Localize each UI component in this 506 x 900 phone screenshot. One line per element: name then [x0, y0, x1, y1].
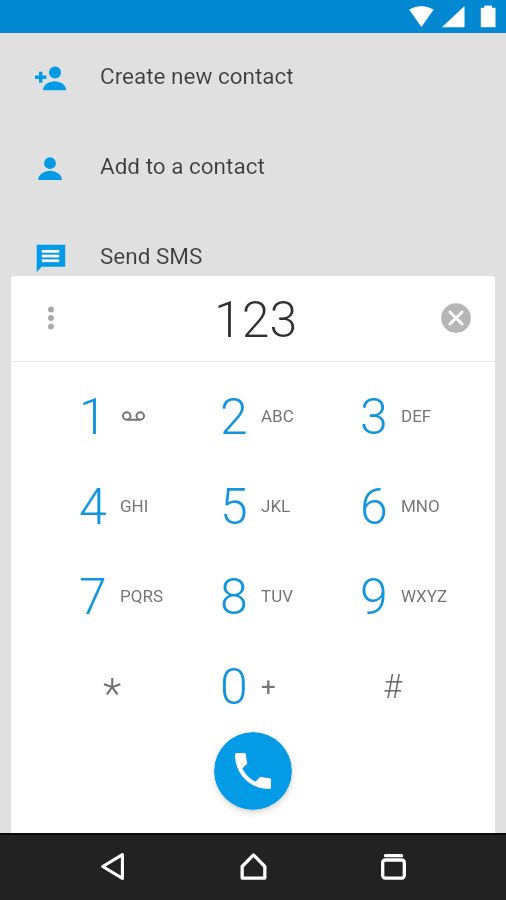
staticText: WXYZ — [401, 586, 448, 606]
staticText: JKL — [261, 496, 291, 516]
staticText: TUV — [261, 586, 293, 606]
staticText: Create new contact — [100, 63, 294, 89]
staticText: DEF — [401, 406, 432, 426]
staticText: + — [261, 672, 276, 702]
staticText: MNO — [401, 496, 440, 516]
staticText: Add to a contact — [100, 153, 265, 179]
staticText: # — [383, 667, 403, 706]
staticText: 6 — [360, 478, 388, 537]
staticText: GHI — [120, 496, 149, 516]
button[interactable]: 5 — [183, 461, 323, 551]
button[interactable]: Clear — [432, 297, 476, 341]
button[interactable]: 4 — [42, 461, 183, 551]
staticText: 123 — [214, 291, 298, 350]
staticText: 7 — [79, 568, 107, 627]
button[interactable]: Create new contact — [0, 33, 506, 123]
button[interactable]: Add to a contact — [0, 123, 506, 213]
button[interactable]: 1 — [42, 371, 183, 461]
staticText: ABC — [261, 406, 294, 426]
staticText: * — [103, 668, 122, 718]
button[interactable]: 0 — [183, 641, 323, 731]
button[interactable]: Back — [43, 833, 183, 900]
button[interactable]: Recents — [323, 833, 463, 900]
button[interactable]: 6 — [323, 461, 463, 551]
button[interactable]: # — [323, 641, 463, 731]
button[interactable]: Call — [214, 732, 292, 810]
staticText: 2 — [220, 388, 248, 447]
staticText: Send SMS — [100, 243, 203, 269]
button[interactable]: 8 — [183, 551, 323, 641]
button[interactable]: 3 — [323, 371, 463, 461]
button[interactable]: 7 — [42, 551, 183, 641]
staticText: 1 — [79, 388, 107, 447]
button[interactable]: Send SMS — [0, 213, 506, 303]
button[interactable]: * — [42, 641, 183, 731]
staticText: 5 — [220, 478, 248, 537]
button[interactable]: Home — [183, 833, 323, 900]
button[interactable]: More options — [27, 295, 75, 343]
staticText: 8 — [220, 568, 248, 627]
staticText: 9 — [360, 568, 388, 627]
staticText: 3 — [360, 388, 388, 447]
staticText: 0 — [220, 658, 248, 717]
button[interactable]: 2 — [183, 371, 323, 461]
staticText: PQRS — [120, 586, 163, 606]
staticText: 4 — [79, 478, 107, 537]
button[interactable]: 9 — [323, 551, 463, 641]
